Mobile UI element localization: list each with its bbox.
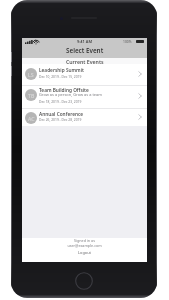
button[interactable]: TB: [22, 85, 147, 108]
staticText: Dec 10, 2019 - Dec 15, 2019: [39, 74, 82, 78]
staticText: Grow as a person, Grow as a team: [39, 92, 102, 97]
button[interactable]: Logout: [73, 249, 96, 256]
staticText: Leadership Summit: [39, 67, 84, 73]
staticText: 9:41 AM: [77, 39, 92, 44]
staticText: LS: [28, 71, 34, 78]
button[interactable]: AC: [22, 109, 147, 126]
button[interactable]: LS: [22, 64, 147, 85]
staticText: 100%: [123, 39, 132, 43]
staticText: user@example.com: [67, 243, 102, 248]
staticText: Team Building Offsite: [39, 87, 89, 93]
staticText: Select Event: [66, 46, 104, 55]
staticText: Annual Conference: [39, 111, 84, 117]
staticText: Signed in as: [74, 238, 95, 243]
staticText: TB: [28, 92, 35, 99]
staticText: AC: [28, 115, 35, 122]
staticText: Current Events: [66, 58, 104, 64]
staticText: Logout: [78, 250, 91, 255]
staticText: Dec 18, 2019 - Dec 23, 2019: [39, 99, 82, 103]
staticText: Dec 26, 2019 - Dec 28, 2019: [39, 117, 82, 121]
